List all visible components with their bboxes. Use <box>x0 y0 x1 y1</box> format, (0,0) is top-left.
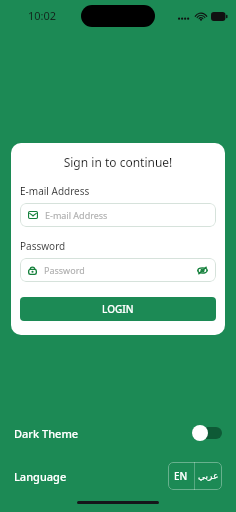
staticText: Language <box>14 469 67 484</box>
staticText: LOGIN <box>102 302 134 316</box>
button[interactable]: LOGIN <box>20 297 216 321</box>
button[interactable]: EN <box>168 462 194 490</box>
button[interactable]: Dark theme toggle <box>192 425 222 441</box>
staticText: عربي <box>198 471 219 481</box>
staticText: Dark Theme <box>14 426 79 441</box>
button[interactable]: E-mail Address <box>20 203 216 227</box>
staticText: E-mail Address <box>45 209 108 221</box>
button[interactable]: Dark Theme <box>0 410 236 456</box>
staticText: EN <box>174 469 188 483</box>
button[interactable]: Password <box>20 258 216 282</box>
staticText: Sign in to continue! <box>20 154 216 170</box>
button[interactable]: عربي <box>195 462 222 490</box>
staticText: Password <box>20 239 66 253</box>
staticText: Password <box>44 264 85 276</box>
staticText: E-mail Address <box>20 184 90 198</box>
staticText: 10:02 <box>28 8 57 23</box>
button[interactable]: Toggle password visibility <box>196 264 208 276</box>
